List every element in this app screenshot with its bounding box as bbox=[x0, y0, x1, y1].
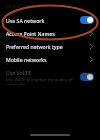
staticText: Use VoLTE to improve the quality of voic… bbox=[6, 77, 76, 85]
button[interactable]: Mobile networks bbox=[0, 53, 100, 66]
staticText: Mobile networks bbox=[6, 56, 47, 63]
staticText: Use VoLTE bbox=[6, 69, 32, 76]
staticText: Access Point Names bbox=[6, 30, 55, 37]
staticText: Use SA network bbox=[6, 17, 45, 24]
button[interactable]: Use VoLTE toggle bbox=[80, 73, 94, 81]
other: Open bbox=[89, 43, 94, 50]
button[interactable]: Preferred network type bbox=[0, 40, 100, 53]
staticText: Preferred network type bbox=[6, 43, 63, 50]
button[interactable]: Use SA network bbox=[0, 13, 100, 27]
button[interactable]: Use VoLTE bbox=[0, 66, 100, 88]
button[interactable]: Use SA network toggle bbox=[80, 16, 94, 24]
other: Open bbox=[89, 30, 94, 37]
button[interactable]: Access Point Names bbox=[0, 27, 100, 40]
other: Open bbox=[89, 56, 94, 63]
staticText: Mobile network bbox=[6, 3, 39, 9]
